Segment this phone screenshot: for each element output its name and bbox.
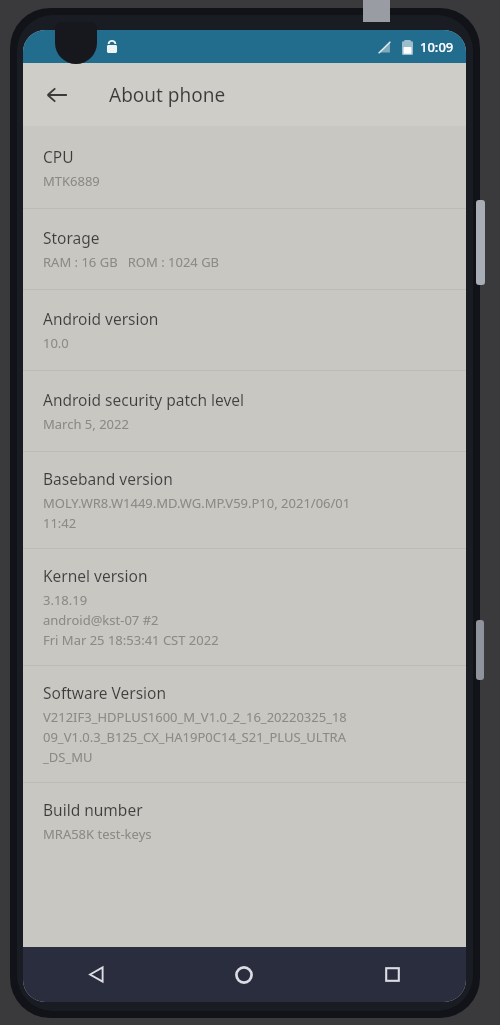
staticText: Android security patch level xyxy=(43,389,245,410)
button[interactable]: Android security patch level xyxy=(23,371,466,451)
staticText: Kernel version xyxy=(43,565,148,586)
button[interactable]: Baseband version xyxy=(23,452,466,548)
staticText: _DS_MU xyxy=(43,748,93,766)
staticText: 10:09 xyxy=(420,38,454,56)
staticText: Fri Mar 25 18:53:41 CST 2022 xyxy=(43,631,219,649)
button[interactable]: Home xyxy=(170,947,318,1002)
staticText: 09_V1.0.3_B125_CX_HA19P0C14_S21_PLUS_ULT… xyxy=(43,728,347,746)
staticText: MRA58K test-keys xyxy=(43,825,152,843)
staticText: 10.0 xyxy=(43,334,69,352)
staticText: March 5, 2022 xyxy=(43,415,129,433)
staticText: Android version xyxy=(43,308,159,329)
staticText: Baseband version xyxy=(43,468,173,489)
staticText: MTK6889 xyxy=(43,172,100,190)
button[interactable]: Storage xyxy=(23,209,466,289)
button[interactable]: Software Version xyxy=(23,666,466,782)
button[interactable]: CPU xyxy=(23,126,466,208)
button[interactable]: Kernel version xyxy=(23,549,466,665)
staticText: 3.18.19 xyxy=(43,591,88,609)
button[interactable]: Android version xyxy=(23,290,466,370)
staticText: Storage xyxy=(43,227,100,248)
staticText: Build number xyxy=(43,799,143,820)
staticText: RAM : 16 GB ROM : 1024 GB xyxy=(43,253,220,271)
staticText: About phone xyxy=(109,82,226,108)
staticText: V212IF3_HDPLUS1600_M_V1.0_2_16_20220325_… xyxy=(43,708,347,726)
button[interactable]: Recent apps xyxy=(318,947,466,1002)
button[interactable]: Build number xyxy=(23,783,466,859)
button[interactable]: Back xyxy=(23,947,170,1002)
button[interactable]: Back xyxy=(35,73,79,117)
staticText: Software Version xyxy=(43,682,167,703)
staticText: android@kst-07 #2 xyxy=(43,611,159,629)
staticText: 11:42 xyxy=(43,514,77,532)
staticText: CPU xyxy=(43,146,74,167)
staticText: MOLY.WR8.W1449.MD.WG.MP.V59.P10, 2021/06… xyxy=(43,494,351,512)
